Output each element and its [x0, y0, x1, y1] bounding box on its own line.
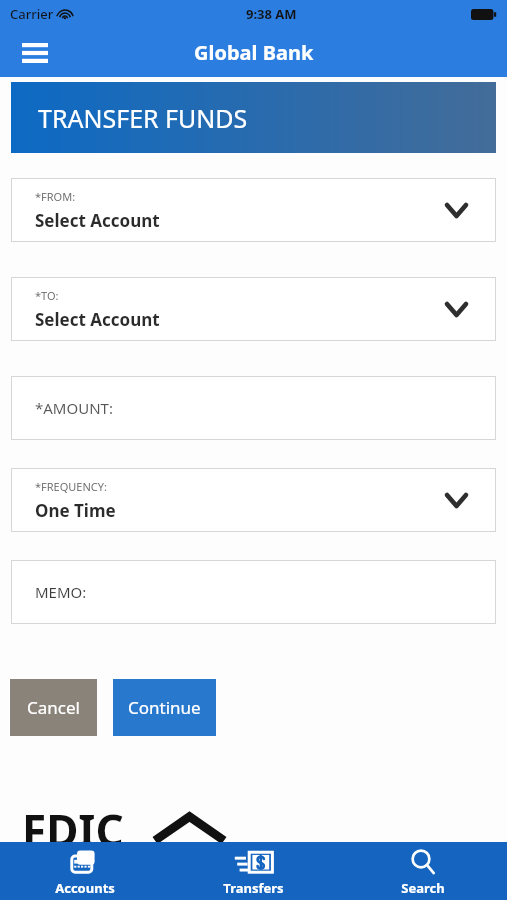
staticText: Select Account [35, 308, 160, 331]
staticText: *AMOUNT: [35, 398, 113, 418]
staticText: TRANSFER FUNDS [38, 101, 248, 135]
staticText: Carrier [10, 5, 54, 23]
button[interactable]: Transfers [169, 842, 338, 900]
staticText: Search [401, 879, 445, 897]
staticText: *FROM: [35, 189, 76, 204]
staticText: One Time [35, 499, 116, 522]
button[interactable]: *FREQUENCY: [11, 468, 496, 532]
button[interactable]: Accounts [0, 842, 169, 900]
button[interactable]: Continue [113, 679, 216, 736]
button[interactable]: Cancel [10, 679, 97, 736]
button[interactable]: Menu [18, 36, 52, 70]
staticText: *FREQUENCY: [35, 479, 107, 494]
staticText: Global Bank [194, 39, 314, 66]
button[interactable]: MEMO: [11, 560, 496, 624]
button[interactable]: *FROM: [11, 178, 496, 242]
button[interactable]: Search [338, 842, 507, 900]
staticText: Cancel [27, 696, 80, 719]
button[interactable]: *TO: [11, 277, 496, 341]
staticText: *TO: [35, 288, 59, 303]
staticText: MEMO: [35, 582, 87, 602]
staticText: Accounts [55, 879, 115, 897]
staticText: Transfers [223, 879, 284, 897]
staticText: 9:38 AM [246, 5, 297, 23]
button[interactable]: *AMOUNT: [11, 376, 496, 440]
staticText: Select Account [35, 209, 160, 232]
staticText: Continue [128, 696, 201, 719]
staticText: FDIC [22, 800, 124, 858]
